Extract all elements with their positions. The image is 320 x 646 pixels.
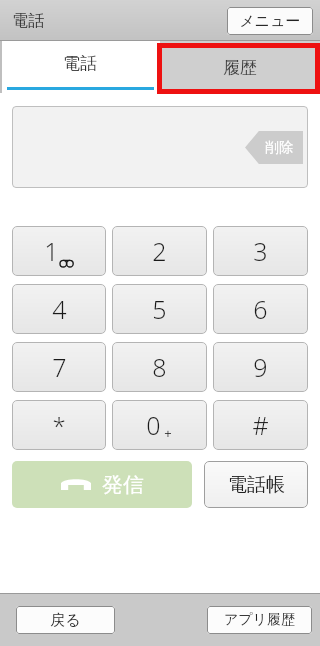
- staticText: 履歴: [223, 57, 257, 78]
- staticText: 削除: [265, 139, 293, 157]
- staticText: 電話: [12, 11, 44, 31]
- button[interactable]: 発信: [12, 461, 192, 508]
- staticText: 5: [152, 292, 167, 326]
- staticText: *: [52, 409, 66, 442]
- staticText: 2: [152, 234, 167, 268]
- button[interactable]: *: [12, 400, 106, 450]
- staticText: 8: [152, 350, 167, 384]
- staticText: 戻る: [50, 611, 81, 630]
- button[interactable]: 電話: [0, 41, 160, 93]
- button[interactable]: 3: [213, 226, 308, 276]
- button[interactable]: 7: [12, 342, 106, 392]
- button[interactable]: アプリ履歴: [207, 606, 312, 634]
- staticText: アプリ履歴: [224, 611, 295, 629]
- button[interactable]: 戻る: [16, 606, 115, 634]
- staticText: 9: [253, 350, 268, 384]
- button[interactable]: メニュー: [227, 7, 313, 35]
- button[interactable]: 6: [213, 284, 308, 334]
- staticText: 発信: [102, 472, 144, 498]
- staticText: 4: [52, 292, 67, 326]
- staticText: 1: [44, 234, 59, 268]
- staticText: 7: [52, 350, 67, 384]
- button[interactable]: 8: [112, 342, 207, 392]
- button[interactable]: 履歴: [160, 41, 320, 93]
- staticText: 6: [253, 292, 268, 326]
- button[interactable]: #: [213, 400, 308, 450]
- staticText: メニュー: [239, 12, 301, 31]
- staticText: 3: [253, 234, 268, 268]
- button[interactable]: 電話帳: [204, 461, 308, 508]
- staticText: 0: [146, 408, 161, 442]
- button[interactable]: 9: [213, 342, 308, 392]
- button[interactable]: 0: [112, 400, 207, 450]
- button[interactable]: 4: [12, 284, 106, 334]
- staticText: #: [252, 408, 269, 442]
- button[interactable]: 1: [12, 226, 106, 276]
- button[interactable]: 5: [112, 284, 207, 334]
- staticText: +: [164, 424, 172, 442]
- staticText: 電話: [63, 53, 97, 74]
- button[interactable]: 2: [112, 226, 207, 276]
- staticText: 電話帳: [228, 473, 285, 497]
- button[interactable]: 削除: [245, 131, 303, 164]
